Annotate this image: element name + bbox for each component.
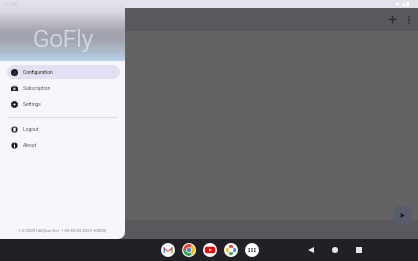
button[interactable]: Photos <box>224 243 238 257</box>
staticText: Settings <box>23 101 41 107</box>
button[interactable]: Configuration <box>7 65 120 79</box>
staticText: About <box>23 142 37 148</box>
button[interactable]: Home <box>328 243 342 257</box>
button[interactable]: Chrome <box>182 243 196 257</box>
button[interactable]: About <box>7 138 120 152</box>
button[interactable]: YouTube <box>203 243 217 257</box>
button[interactable]: Gmail <box>161 243 175 257</box>
button[interactable]: Add <box>383 10 401 28</box>
button[interactable]: Recent apps <box>352 243 366 257</box>
staticText: Logout <box>23 126 39 132</box>
staticText: Subscription <box>23 85 51 91</box>
staticText: 1.0.2023140(Sun Oct 1 09:53:53 2023 +000… <box>0 228 125 233</box>
staticText: Configuration <box>23 69 53 75</box>
button[interactable]: Settings <box>7 97 120 111</box>
staticText: GoFly <box>33 25 94 53</box>
button[interactable]: Back <box>304 243 318 257</box>
button[interactable]: Subscription <box>7 81 120 95</box>
button[interactable]: Play <box>393 206 412 224</box>
staticText: 11:49 <box>3 1 17 7</box>
button[interactable]: Logout <box>7 122 120 136</box>
button[interactable]: All apps <box>245 243 259 257</box>
button[interactable]: More options <box>401 12 416 27</box>
